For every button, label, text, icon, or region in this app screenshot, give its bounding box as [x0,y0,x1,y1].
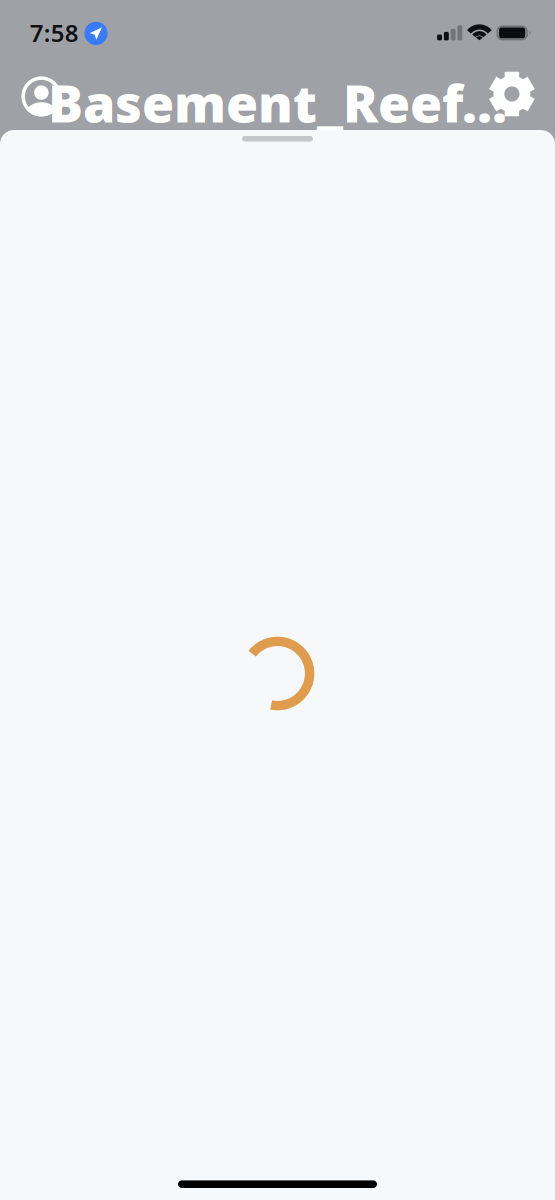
staticText: 7:58 [30,17,79,49]
staticText: Basement_Reef… [48,68,507,137]
button[interactable]: Account [21,76,61,116]
button[interactable]: Settings [488,70,535,118]
